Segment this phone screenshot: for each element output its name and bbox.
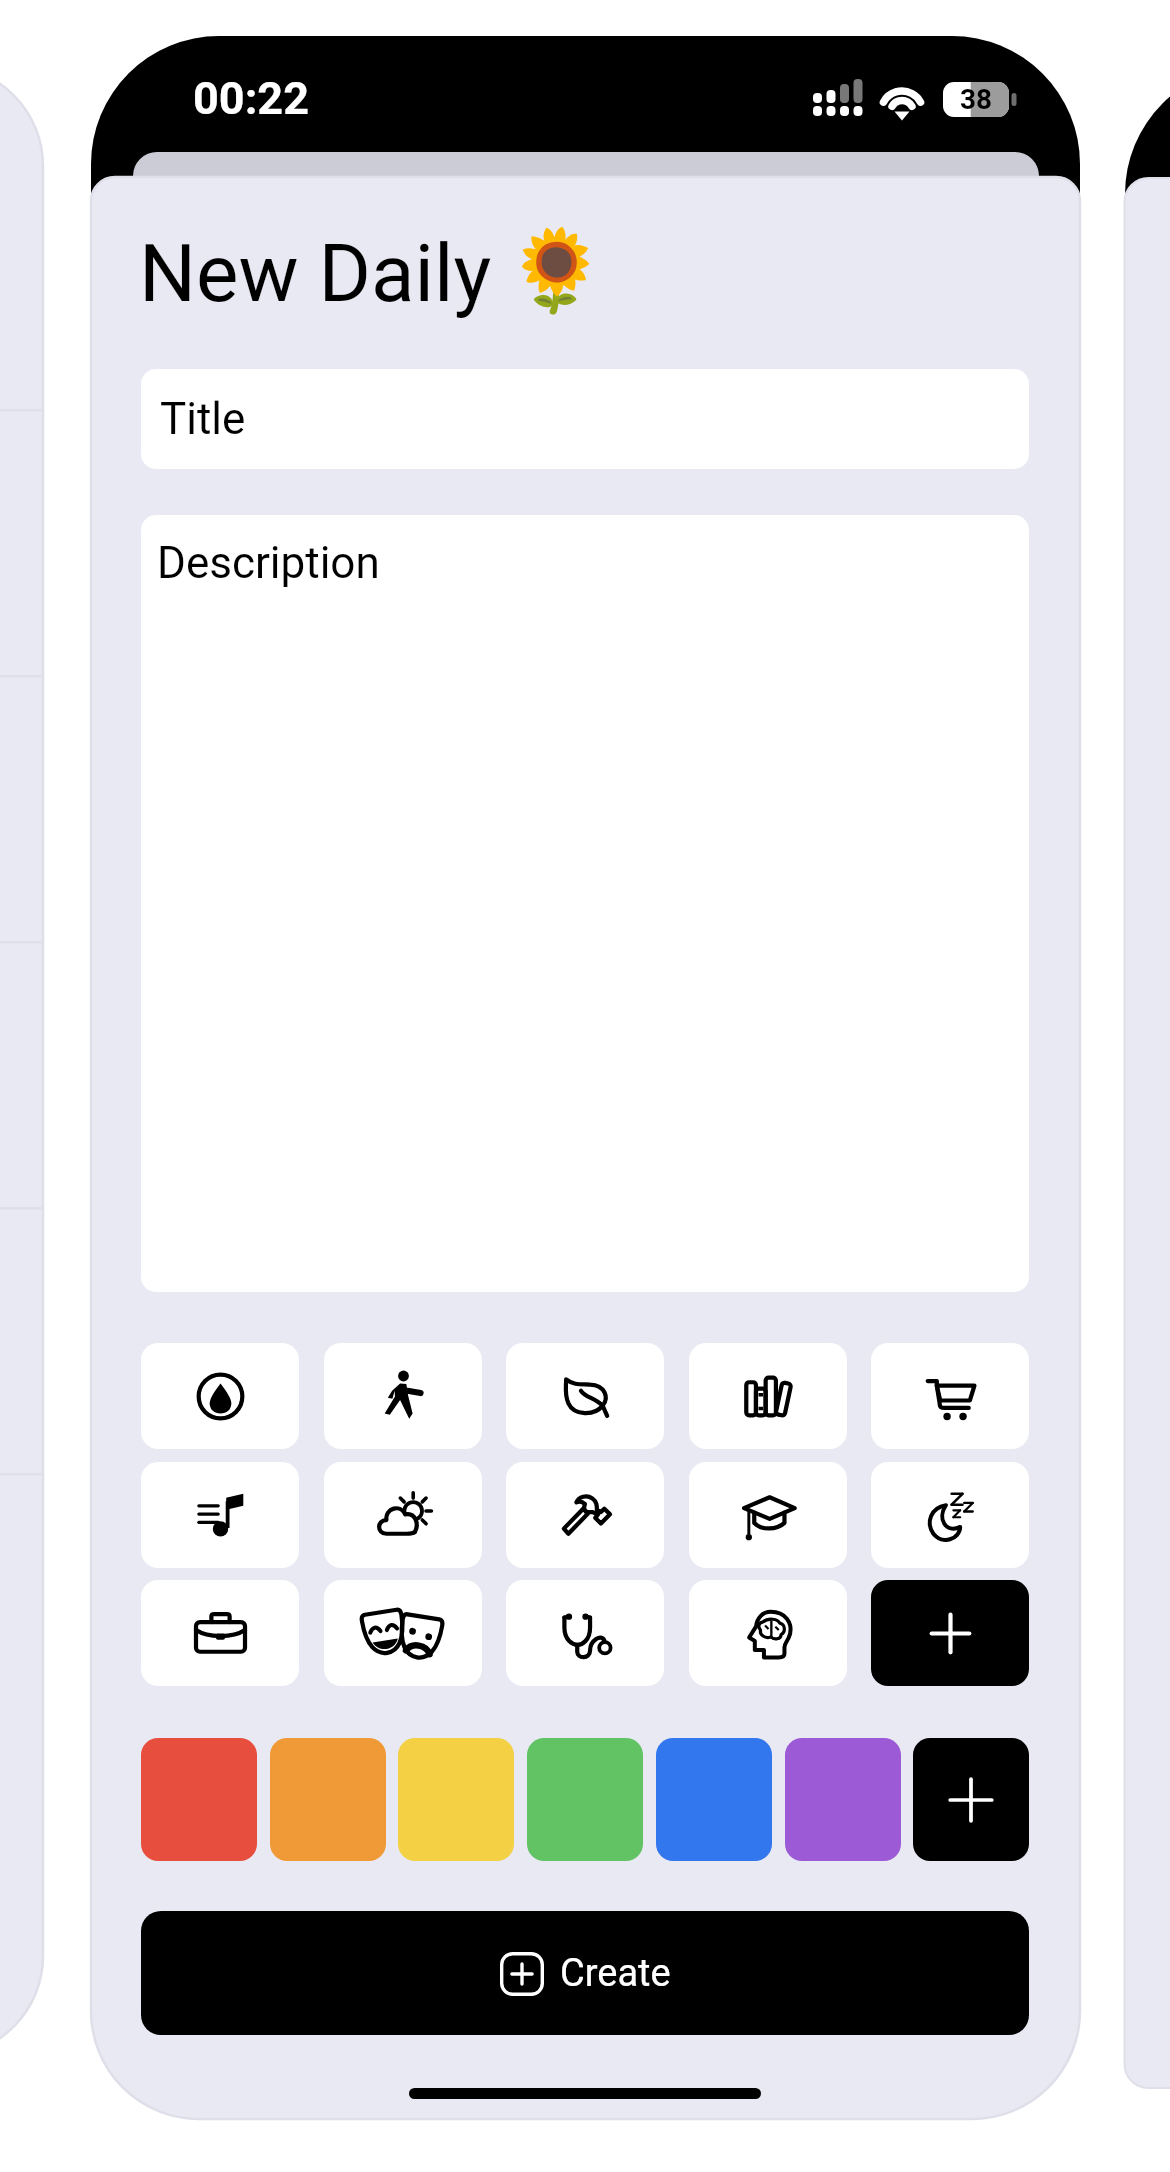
button[interactable]: Walking: [324, 1343, 482, 1449]
button[interactable]: Add icon: [871, 1580, 1029, 1686]
staticText: Create: [560, 1951, 671, 1996]
button[interactable]: Sleep: [871, 1462, 1029, 1568]
staticText: Description: [157, 537, 380, 589]
button[interactable]: Colour 5: [656, 1738, 772, 1861]
button[interactable]: Reading: [689, 1343, 847, 1449]
button[interactable]: Study: [689, 1462, 847, 1568]
button[interactable]: Description: [141, 515, 1029, 1292]
button[interactable]: Health: [506, 1580, 664, 1686]
button[interactable]: Title: [141, 369, 1029, 469]
staticText: New Daily: [139, 227, 492, 321]
staticText: Title: [160, 393, 246, 445]
button[interactable]: Add colour: [913, 1738, 1029, 1861]
staticText: 38: [960, 83, 993, 116]
button[interactable]: Colour 2: [270, 1738, 386, 1861]
button[interactable]: Shopping: [871, 1343, 1029, 1449]
staticText: 🌻: [506, 224, 606, 318]
button[interactable]: Create: [141, 1911, 1029, 2035]
button[interactable]: Entertainment: [324, 1580, 482, 1686]
button[interactable]: Weather: [324, 1462, 482, 1568]
staticText: 00:22: [193, 72, 309, 125]
button[interactable]: Colour 4: [527, 1738, 643, 1861]
button[interactable]: Colour 3: [398, 1738, 514, 1861]
button[interactable]: Colour 1: [141, 1738, 257, 1861]
button[interactable]: Work: [141, 1580, 299, 1686]
button[interactable]: Nature: [506, 1343, 664, 1449]
button[interactable]: Music: [141, 1462, 299, 1568]
button[interactable]: Colour 6: [785, 1738, 901, 1861]
button[interactable]: Chores: [506, 1462, 664, 1568]
button[interactable]: Mindfulness: [689, 1580, 847, 1686]
button[interactable]: Water: [141, 1343, 299, 1449]
